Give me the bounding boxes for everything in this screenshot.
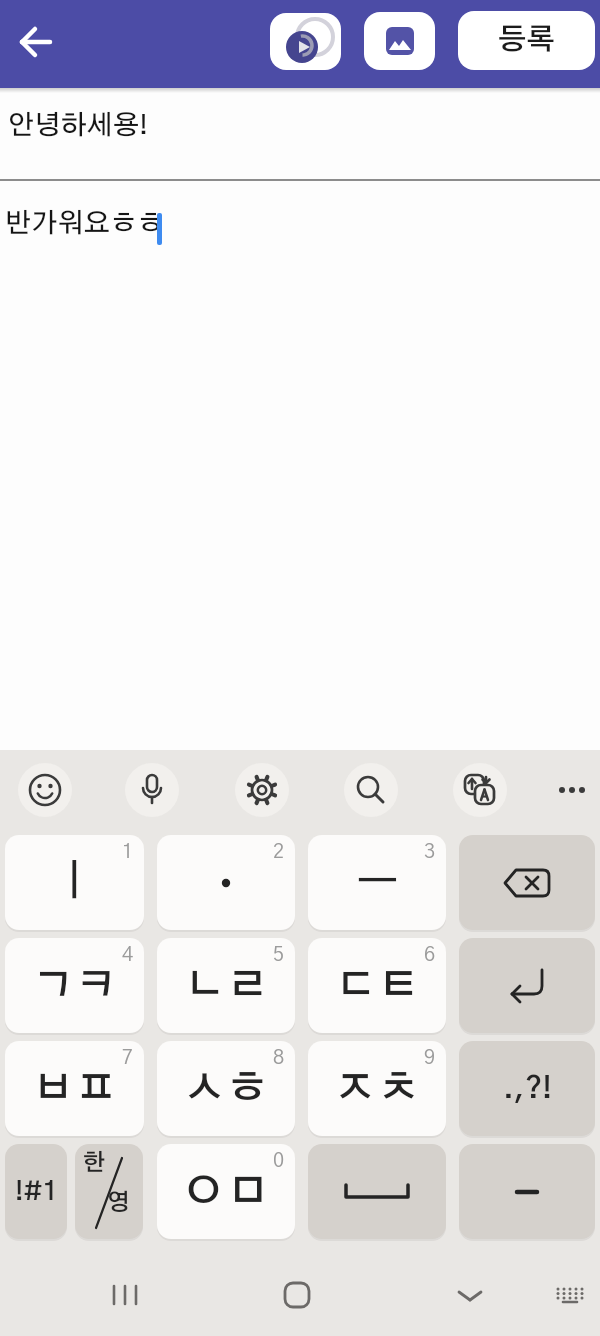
staticText: 반가워요ㅎㅎ: [5, 210, 165, 237]
button[interactable]: ㄷㅌ: [308, 938, 446, 1033]
button[interactable]: ㄴㄹ: [157, 938, 295, 1033]
staticText: !#1: [15, 1179, 58, 1205]
button[interactable]: [244, 772, 280, 808]
staticText: ㄷㅌ: [334, 966, 420, 1006]
button[interactable]: 한: [75, 1144, 143, 1239]
button[interactable]: [550, 1275, 590, 1315]
staticText: 9: [424, 1048, 436, 1068]
button[interactable]: [308, 1144, 446, 1239]
staticText: 한: [83, 1152, 106, 1175]
button[interactable]: [453, 763, 507, 817]
button[interactable]: [18, 26, 54, 58]
button[interactable]: [459, 938, 595, 1033]
staticText: ㄱㅋ: [32, 966, 118, 1006]
staticText: 2: [273, 842, 285, 862]
staticText: ㄴㄹ: [183, 966, 269, 1006]
staticText: 안녕하세용!: [8, 112, 148, 139]
button[interactable]: ㅣ: [5, 835, 144, 930]
staticText: ㅈㅊ: [334, 1069, 420, 1109]
button[interactable]: ㅇㅁ: [157, 1144, 295, 1239]
staticText: 3: [424, 842, 436, 862]
staticText: ㅇㅁ: [181, 1171, 271, 1213]
staticText: ㅡ: [356, 861, 399, 904]
staticText: 1: [122, 842, 134, 862]
staticText: 영: [107, 1192, 130, 1215]
button[interactable]: [105, 1275, 145, 1315]
button[interactable]: ㅈㅊ: [308, 1041, 446, 1136]
button[interactable]: [450, 1275, 490, 1315]
button[interactable]: 2: [157, 835, 295, 930]
staticText: 7: [122, 1048, 134, 1068]
staticText: ㅂㅍ: [32, 1069, 118, 1109]
button[interactable]: [18, 763, 72, 817]
staticText: 6: [424, 945, 436, 965]
staticText: 8: [273, 1048, 285, 1068]
button[interactable]: ㅅㅎ: [157, 1041, 295, 1136]
button[interactable]: [462, 772, 498, 808]
button[interactable]: !#1: [5, 1144, 67, 1239]
button[interactable]: [125, 763, 179, 817]
staticText: 4: [122, 945, 134, 965]
button[interactable]: [459, 835, 595, 930]
staticText: 0: [273, 1151, 285, 1171]
button[interactable]: [459, 1144, 595, 1239]
button[interactable]: [277, 1275, 317, 1315]
staticText: ㅅㅎ: [183, 1069, 269, 1109]
button[interactable]: [554, 772, 590, 808]
button[interactable]: [364, 12, 435, 70]
button[interactable]: ㄱㅋ: [5, 938, 144, 1033]
button[interactable]: [344, 763, 398, 817]
staticText: 등록: [498, 26, 556, 55]
button[interactable]: ㅡ: [308, 835, 446, 930]
button[interactable]: 등록: [458, 11, 595, 70]
button[interactable]: [134, 772, 170, 808]
staticText: ㅣ: [53, 861, 96, 904]
button[interactable]: ㅂㅍ: [5, 1041, 144, 1136]
button[interactable]: [235, 763, 289, 817]
staticText: 5: [273, 945, 285, 965]
button[interactable]: [270, 13, 341, 70]
staticText: .,?!: [503, 1074, 552, 1104]
button[interactable]: [353, 772, 389, 808]
button[interactable]: .,?!: [459, 1041, 595, 1136]
